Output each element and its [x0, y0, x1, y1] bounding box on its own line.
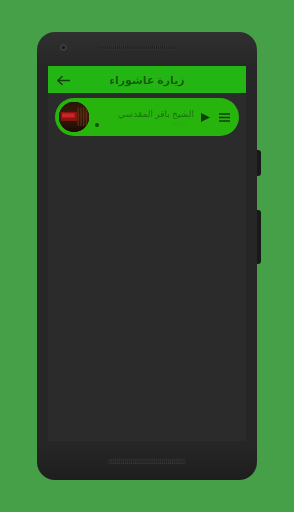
button[interactable]: Back: [52, 69, 74, 91]
button[interactable]: الشيخ باقر المقدسي: [55, 98, 239, 136]
button[interactable]: Play: [196, 108, 214, 126]
staticText: زيارة عاشوراء: [109, 72, 185, 87]
button[interactable]: Menu: [214, 107, 234, 127]
staticText: الشيخ باقر المقدسي: [118, 107, 194, 119]
